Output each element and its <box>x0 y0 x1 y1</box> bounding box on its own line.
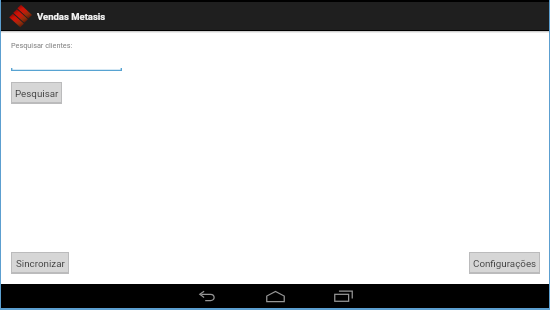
button[interactable]: Recent apps <box>326 284 360 308</box>
staticText: Sincronizar <box>16 258 65 269</box>
staticText: Pesquisar <box>15 88 59 99</box>
staticText: Configurações <box>473 258 537 269</box>
button[interactable]: Back <box>190 284 224 308</box>
staticText: Vendas Metasis <box>37 11 106 22</box>
staticText: Pesquisar clientes: <box>11 41 73 50</box>
button[interactable]: Pesquisar <box>11 82 62 104</box>
button[interactable]: Configurações <box>469 252 540 274</box>
button[interactable]: Sincronizar <box>11 252 69 274</box>
button[interactable]: Home <box>258 284 292 308</box>
